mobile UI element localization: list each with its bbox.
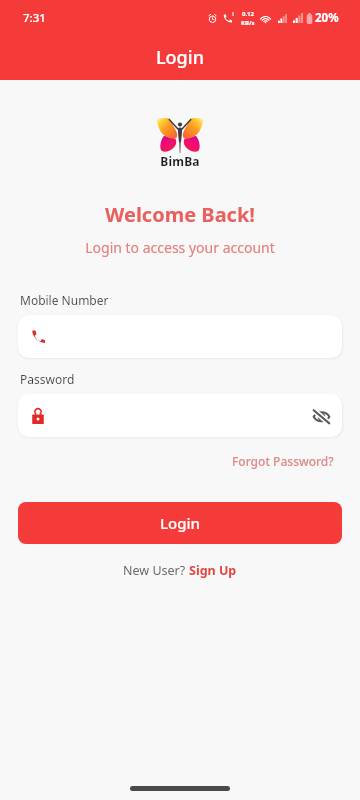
staticText: BimBa [0,153,360,169]
staticText: Welcome Back! [0,201,360,228]
staticText: Password [20,371,75,387]
staticText: 20% [315,10,339,26]
staticText: Login [160,513,200,533]
staticText: Mobile Number [20,292,109,308]
staticText: 7:31 [23,10,46,26]
button[interactable]: Toggle password visibility [306,401,336,431]
button[interactable]: Login [18,502,342,544]
button[interactable]: Sign Up [189,562,237,579]
staticText: KB/s [241,19,255,27]
staticText: New User? [123,562,189,579]
staticText: Login to access your account [0,238,360,257]
button[interactable] [18,315,342,358]
button[interactable]: Forgot Password? [232,447,360,475]
button[interactable]: Toggle password visibility [18,394,342,437]
staticText: 0.12 [242,10,254,18]
staticText: Login [156,45,204,70]
